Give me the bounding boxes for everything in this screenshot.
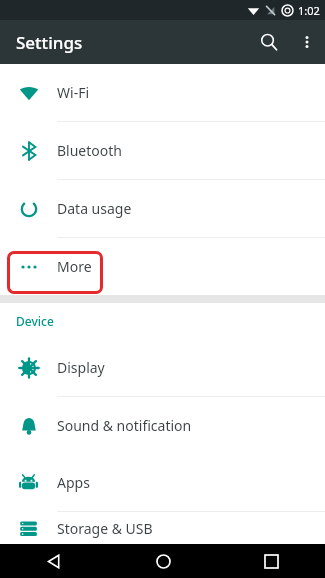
staticText: 1:02	[298, 3, 320, 18]
button[interactable]: Apps	[0, 454, 325, 511]
staticText: Storage & USB	[57, 519, 153, 538]
staticText: Data usage	[57, 199, 132, 218]
button[interactable]: Search	[249, 22, 289, 62]
staticText: Display	[57, 358, 105, 377]
staticText: Bluetooth	[57, 141, 122, 160]
staticText: Sound & notification	[57, 416, 192, 435]
button[interactable]: Data usage	[0, 180, 325, 237]
button[interactable]: Storage & USB	[0, 512, 325, 544]
staticText: Settings	[16, 31, 83, 54]
button[interactable]: Back	[0, 544, 109, 578]
staticText: Apps	[57, 473, 90, 492]
button[interactable]: Sound & notification	[0, 397, 325, 454]
button[interactable]: Display	[0, 339, 325, 396]
button[interactable]: Recent apps	[217, 544, 325, 578]
staticText: Wi-Fi	[57, 83, 90, 102]
button[interactable]: More options	[289, 24, 325, 60]
button[interactable]: Wi-Fi	[0, 64, 325, 121]
button[interactable]: More	[0, 238, 325, 295]
button[interactable]: Bluetooth	[0, 122, 325, 179]
staticText: More	[57, 257, 92, 276]
staticText: Device	[16, 313, 54, 329]
button[interactable]: Home	[109, 544, 217, 578]
